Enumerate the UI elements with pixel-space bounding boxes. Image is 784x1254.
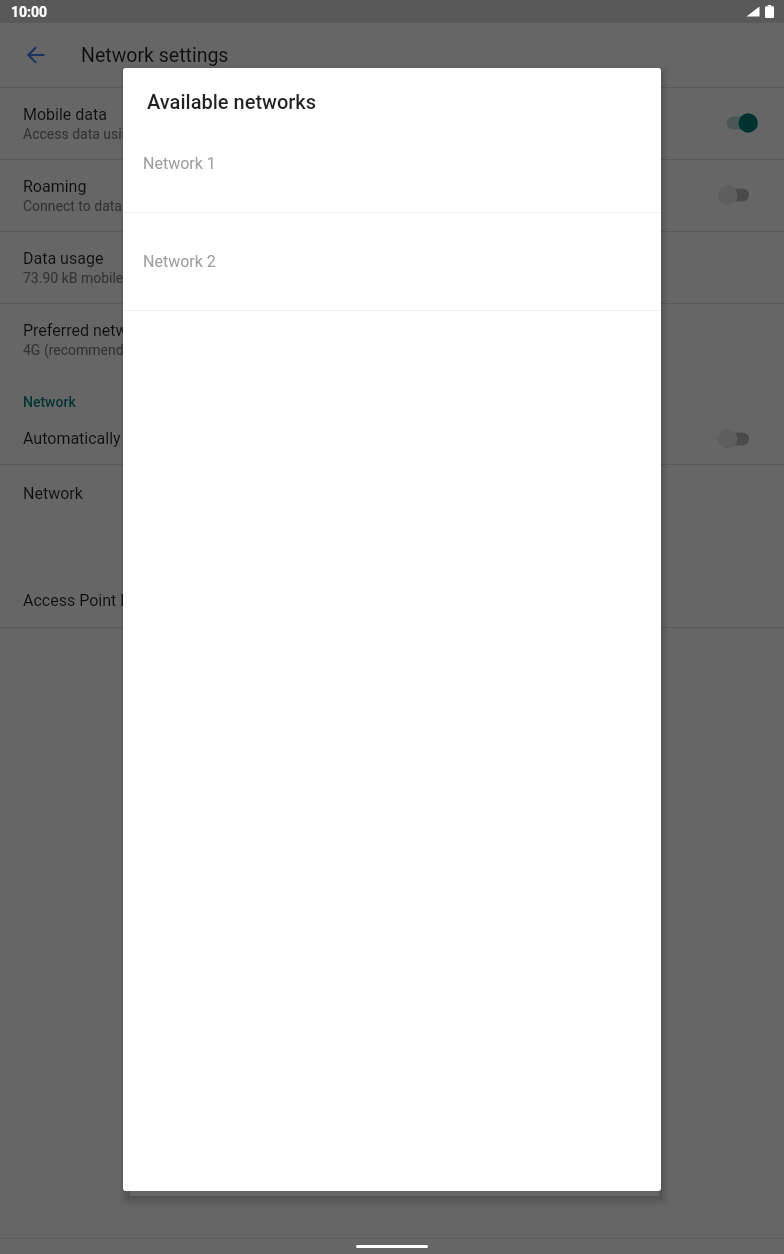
staticText: Access Point Names [23, 591, 172, 610]
button[interactable]: Mobile data [712, 97, 764, 149]
staticText: Automatically select network [23, 429, 229, 448]
staticText: Network 1 [143, 154, 216, 173]
staticText: Network [23, 394, 76, 410]
staticText: Available networks [147, 90, 317, 113]
staticText: Network 2 [143, 252, 216, 271]
staticText: Connect to data services when roaming [23, 198, 269, 214]
staticText: Roaming [23, 177, 87, 196]
button[interactable]: Roaming [712, 169, 764, 221]
staticText: Preferred network type [23, 321, 185, 340]
button[interactable]: Network [0, 465, 784, 579]
button[interactable]: Access Point Names [0, 579, 784, 628]
button[interactable]: Network 1 [123, 115, 661, 213]
staticText: 4G (recommended) [23, 342, 144, 358]
staticText: Mobile data [23, 105, 107, 124]
button[interactable]: Automatically select network [712, 415, 764, 463]
staticText: Network [23, 484, 83, 503]
button[interactable]: Roaming [0, 160, 784, 232]
staticText: 10:00 [11, 4, 48, 20]
staticText: Network settings [81, 44, 229, 67]
staticText: 73.90 kB mobile data used [23, 270, 189, 286]
button[interactable]: Preferred network type [0, 304, 784, 375]
button[interactable]: Network 2 [123, 213, 661, 311]
button[interactable]: Back [16, 35, 56, 75]
staticText: Access data using mobile network [23, 126, 237, 142]
staticText: Data usage [23, 249, 104, 268]
button[interactable]: Data usage [0, 232, 784, 304]
button[interactable]: Mobile data [0, 88, 784, 160]
button[interactable]: Automatically select network [0, 416, 784, 465]
